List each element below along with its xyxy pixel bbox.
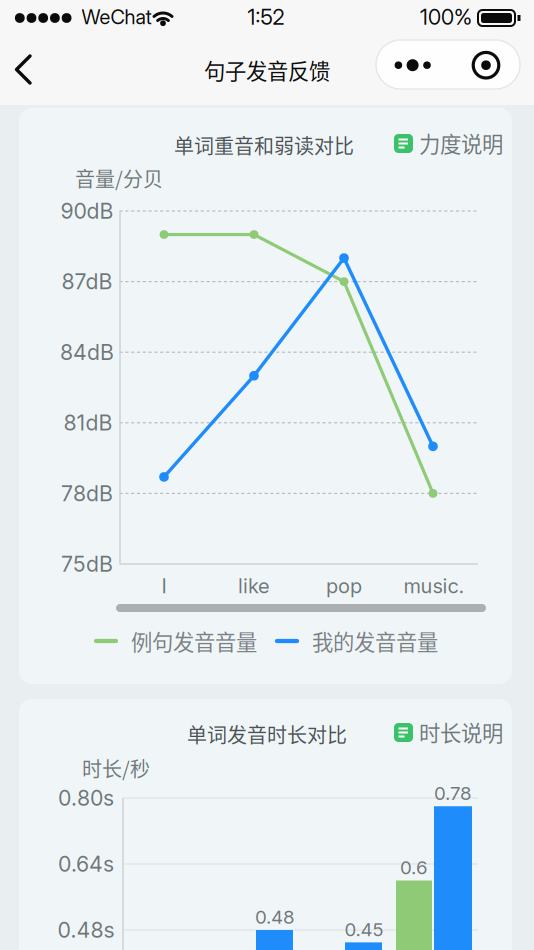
staticText: 单词发音时长对比 — [187, 719, 347, 748]
staticText: 例句发音音量 — [131, 626, 257, 656]
staticText: WeChat — [81, 5, 151, 29]
staticText: 0.80s — [58, 785, 114, 811]
staticText: 0.6 — [400, 856, 428, 879]
staticText: 75dB — [61, 551, 113, 577]
staticText: 力度说明 — [419, 128, 503, 158]
staticText: 100% — [420, 4, 472, 30]
staticText: like — [238, 574, 270, 598]
staticText: I — [161, 574, 166, 598]
staticText: 1:52 — [247, 4, 284, 30]
staticText: 0.78 — [434, 782, 472, 805]
staticText: 0.48s — [57, 917, 114, 943]
staticText: 81dB — [63, 410, 112, 436]
staticText: 单词重音和弱读对比 — [174, 130, 354, 159]
staticText: 音量/分贝 — [75, 163, 163, 192]
staticText: 87dB — [61, 269, 112, 294]
staticText: 0.45 — [344, 918, 383, 941]
button[interactable]: 力度说明 — [0, 0, 534, 950]
staticText: 我的发音音量 — [312, 626, 438, 656]
staticText: 句子发音反馈 — [204, 55, 330, 85]
staticText: music. — [403, 574, 464, 598]
staticText: 时长/秒 — [82, 753, 150, 782]
button[interactable]: 时长说明 — [0, 0, 534, 950]
button[interactable]: Back — [0, 0, 534, 950]
staticText: 0.48 — [255, 906, 295, 928]
staticText: 78dB — [61, 480, 113, 506]
staticText: 90dB — [60, 198, 113, 224]
button[interactable]: More — [0, 0, 534, 950]
staticText: 84dB — [60, 339, 114, 365]
staticText: 时长说明 — [419, 717, 503, 747]
staticText: pop — [326, 574, 362, 598]
staticText: 0.64s — [58, 851, 114, 877]
button[interactable]: Close mini program — [0, 0, 534, 950]
